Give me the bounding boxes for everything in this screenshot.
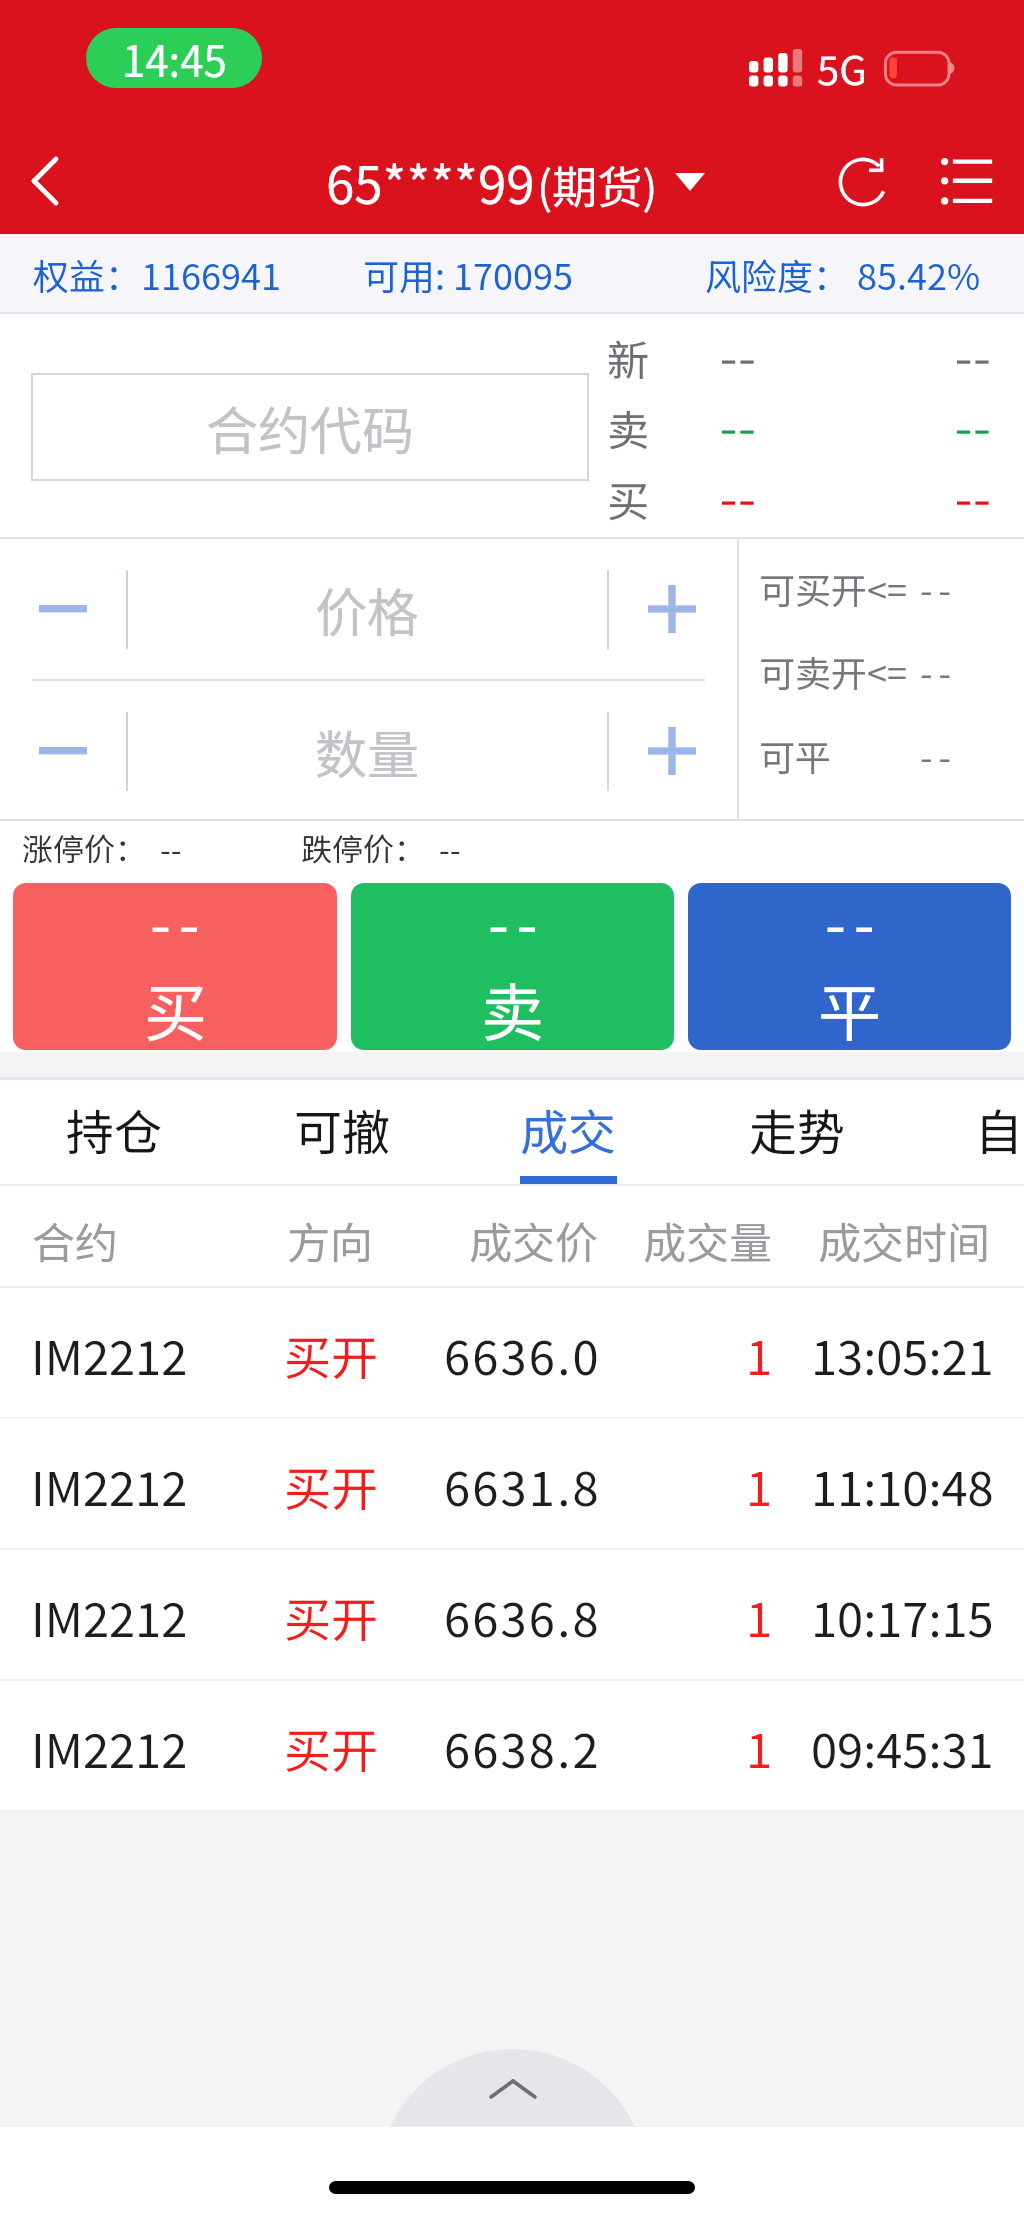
- staticText: 买: [144, 963, 207, 1050]
- staticText: --: [488, 883, 546, 964]
- staticText: 自选: [975, 1094, 1024, 1164]
- staticText: 可用: 170095: [363, 248, 573, 300]
- staticText: IM2212: [31, 1713, 188, 1781]
- staticText: 1: [746, 1582, 773, 1650]
- button[interactable]: Refresh: [818, 137, 908, 227]
- staticText: --: [920, 645, 957, 697]
- staticText: 卖: [607, 397, 650, 457]
- staticText: 成交: [520, 1094, 617, 1164]
- staticText: 可买开<=: [759, 562, 907, 614]
- staticText: 卖: [481, 963, 544, 1050]
- staticText: 新: [607, 327, 650, 387]
- staticText: 1: [746, 1320, 773, 1388]
- staticText: 可平: [759, 729, 832, 781]
- staticText: --: [825, 883, 883, 964]
- button[interactable]: Increase 数量: [609, 681, 737, 821]
- staticText: --: [920, 562, 957, 614]
- staticText: 6636.0: [444, 1320, 601, 1388]
- button[interactable]: 可撤: [228, 1080, 456, 1184]
- staticText: 成交时间: [818, 1209, 990, 1271]
- staticText: 09:45:31: [811, 1713, 994, 1781]
- staticText: 涨停价： --: [22, 825, 182, 870]
- staticText: 11:10:48: [811, 1451, 994, 1519]
- button[interactable]: Decrease 价格: [0, 539, 126, 679]
- staticText: 10:17:15: [811, 1582, 994, 1650]
- staticText: 65****99: [326, 145, 535, 219]
- button[interactable]: IM2212: [0, 1681, 1024, 1812]
- button[interactable]: --: [351, 883, 674, 1050]
- button[interactable]: Decrease 数量: [0, 681, 126, 821]
- staticText: 13:05:21: [811, 1320, 994, 1388]
- button[interactable]: 走势: [683, 1080, 911, 1184]
- staticText: IM2212: [31, 1582, 188, 1650]
- staticText: 跌停价： --: [301, 825, 461, 870]
- staticText: 14:45: [122, 28, 227, 88]
- staticText: 持仓: [66, 1094, 163, 1164]
- button[interactable]: Menu: [920, 137, 1010, 227]
- staticText: (期货): [537, 152, 658, 217]
- staticText: 买: [607, 468, 650, 528]
- staticText: 方向: [287, 1209, 373, 1271]
- staticText: 1: [746, 1713, 773, 1781]
- staticText: 风险度： 85.42%: [705, 248, 981, 300]
- staticText: --: [150, 883, 208, 964]
- button[interactable]: 数量: [128, 681, 607, 821]
- staticText: 买开: [284, 1582, 378, 1650]
- staticText: IM2212: [31, 1451, 188, 1519]
- staticText: 成交量: [643, 1209, 772, 1271]
- button[interactable]: Expand panel: [377, 2049, 648, 2127]
- staticText: 5G: [817, 39, 867, 97]
- button[interactable]: 价格: [128, 539, 607, 679]
- button[interactable]: 成交: [454, 1080, 682, 1184]
- button[interactable]: 持仓: [0, 1080, 228, 1184]
- staticText: 价格: [315, 572, 420, 647]
- staticText: 1: [746, 1451, 773, 1519]
- staticText: 买开: [284, 1451, 378, 1519]
- staticText: 成交价: [469, 1209, 598, 1271]
- staticText: 买开: [284, 1713, 378, 1781]
- staticText: 可撤: [294, 1094, 391, 1164]
- button[interactable]: --: [688, 883, 1011, 1050]
- staticText: 6638.2: [444, 1713, 601, 1781]
- button[interactable]: --: [13, 883, 337, 1050]
- staticText: 数量: [315, 714, 420, 789]
- button[interactable]: IM2212: [0, 1288, 1024, 1419]
- staticText: 买开: [284, 1320, 378, 1388]
- button[interactable]: 自选: [909, 1080, 1024, 1184]
- staticText: 合约: [32, 1209, 118, 1271]
- button[interactable]: 65****99: [326, 140, 705, 224]
- staticText: 6631.8: [444, 1451, 601, 1519]
- button[interactable]: IM2212: [0, 1550, 1024, 1681]
- staticText: 合约代码: [206, 390, 415, 465]
- button[interactable]: Increase 价格: [609, 539, 737, 679]
- button[interactable]: 合约代码: [31, 373, 589, 481]
- button[interactable]: IM2212: [0, 1419, 1024, 1550]
- staticText: 权益：1166941: [33, 248, 281, 300]
- staticText: 走势: [749, 1094, 846, 1164]
- button[interactable]: Back: [0, 136, 90, 226]
- staticText: --: [920, 729, 957, 781]
- staticText: 可卖开<=: [759, 645, 907, 697]
- staticText: 6636.8: [444, 1582, 601, 1650]
- staticText: IM2212: [31, 1320, 188, 1388]
- staticText: 平: [818, 963, 881, 1050]
